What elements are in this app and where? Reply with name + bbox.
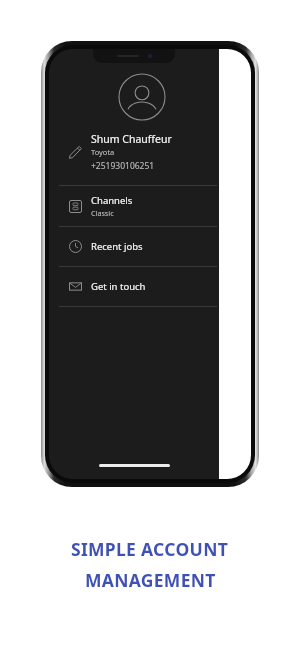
- button[interactable]: Get in touch: [49, 267, 219, 306]
- staticText: Get in touch: [91, 280, 146, 293]
- staticText: SIMPLE ACCOUNT: [71, 537, 229, 561]
- staticText: Channels: [91, 194, 133, 207]
- button[interactable]: Channels: [49, 186, 219, 226]
- staticText: Classic: [91, 208, 114, 218]
- staticText: MANAGEMENT: [85, 568, 216, 592]
- button[interactable]: Recent jobs: [49, 227, 219, 266]
- staticText: Toyota: [91, 147, 115, 157]
- staticText: Shum Chauffeur: [91, 132, 172, 146]
- staticText: +251930106251: [91, 160, 155, 172]
- button[interactable]: Shum Chauffeur: [49, 132, 219, 172]
- staticText: Recent jobs: [91, 240, 143, 253]
